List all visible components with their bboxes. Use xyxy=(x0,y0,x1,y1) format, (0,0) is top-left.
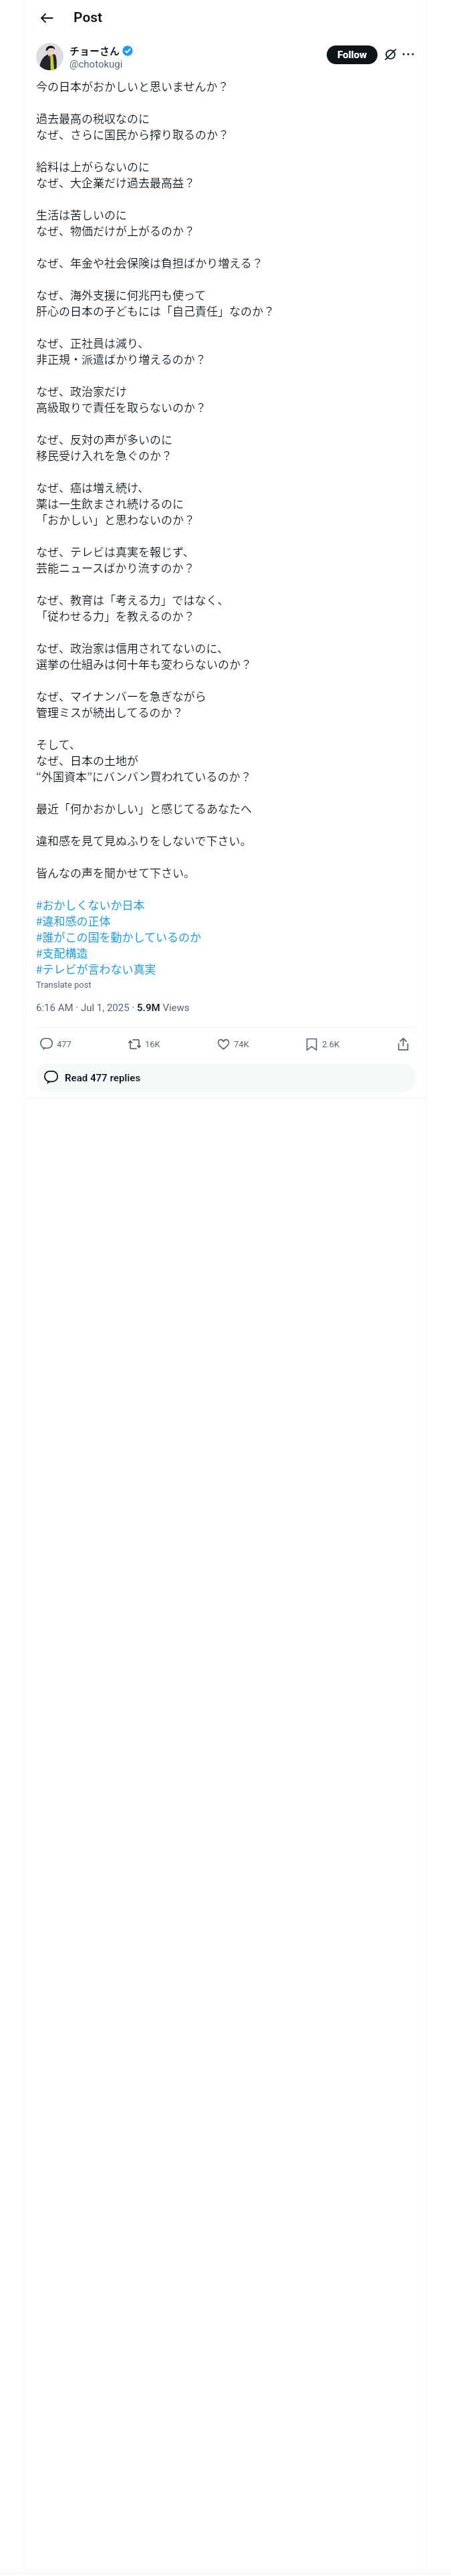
staticText: 74K xyxy=(234,1039,249,1049)
button[interactable]: 2.6K xyxy=(305,1028,340,1060)
button[interactable]: Grok summary xyxy=(383,47,398,62)
staticText: 477 xyxy=(57,1039,71,1049)
staticText: チョーさん xyxy=(69,43,120,58)
button[interactable]: 74K xyxy=(217,1028,249,1060)
button[interactable]: 16K xyxy=(128,1028,160,1060)
staticText: 6:16 AM · Jul 1, 2025 · 5.9M Views xyxy=(36,1002,190,1014)
staticText: Read 477 replies xyxy=(65,1072,141,1084)
staticText: Follow xyxy=(337,49,367,61)
button[interactable]: Follow xyxy=(327,45,378,64)
button[interactable]: Translate post xyxy=(36,980,92,990)
staticText: 今の日本がおかしいと思いませんか？ 過去最高の税収なのに なぜ、さらに国民から搾… xyxy=(36,78,275,977)
button[interactable]: Read 477 replies xyxy=(37,1063,415,1092)
staticText: 16K xyxy=(145,1039,160,1049)
button[interactable]: Share xyxy=(397,1028,410,1060)
staticText: @chotokugi xyxy=(69,58,123,70)
button[interactable]: More options xyxy=(401,47,416,62)
staticText: 2.6K xyxy=(322,1039,340,1049)
staticText: Post xyxy=(73,9,103,26)
button[interactable]: Back xyxy=(35,7,58,29)
button[interactable]: 477 xyxy=(40,1028,71,1060)
